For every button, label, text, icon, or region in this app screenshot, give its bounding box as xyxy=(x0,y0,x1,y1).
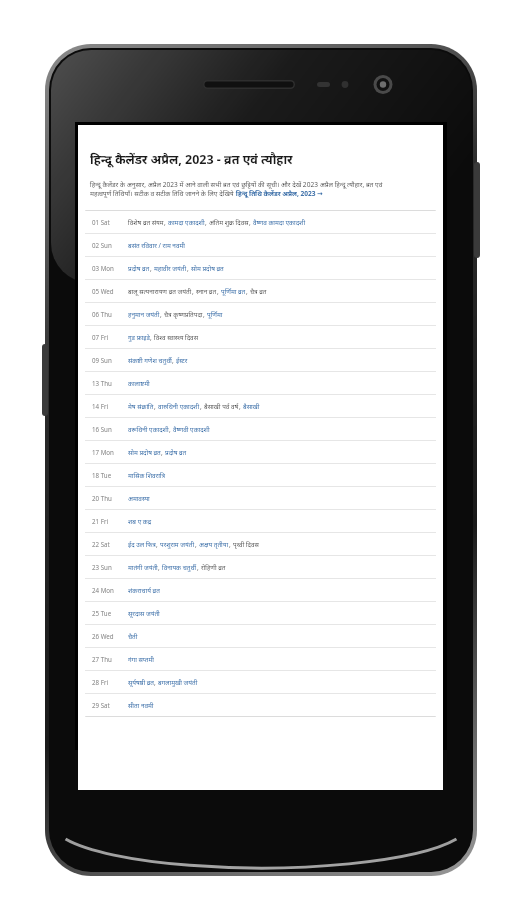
staticText: 28 Fri xyxy=(92,678,128,686)
staticText: वैष्णवी एकादशी xyxy=(173,425,210,434)
staticText: महावीर जयंती xyxy=(154,264,187,273)
staticText: बगलामुखी जयंती xyxy=(158,678,198,687)
staticText: , xyxy=(154,678,158,687)
button[interactable]: हिन्दू तिथि कैलेंडर अप्रैल, 2023 → xyxy=(236,189,323,198)
staticText: वैष्णव कामदा एकादशी xyxy=(253,218,306,227)
staticText: , xyxy=(192,287,196,296)
staticText: , xyxy=(217,287,221,296)
staticText: गंगा सप्तमी xyxy=(128,655,154,664)
button[interactable]: 06 Thu xyxy=(85,303,436,325)
staticText: विश्व स्वास्थ्य दिवस xyxy=(154,333,198,342)
staticText: , xyxy=(150,333,154,342)
staticText: पृथ्वी दिवस xyxy=(233,540,259,549)
staticText: चैती xyxy=(128,632,138,641)
staticText: 27 Thu xyxy=(92,655,128,663)
button[interactable]: 20 Thu xyxy=(85,487,436,509)
staticText: प्रदोष व्रत xyxy=(128,264,150,273)
staticText: विनायक चतुर्थी xyxy=(162,563,197,572)
staticText: प्रदोष व्रत xyxy=(165,448,187,457)
button[interactable]: 02 Sun xyxy=(85,234,436,256)
button[interactable]: 22 Sat xyxy=(85,533,436,555)
staticText: 22 Sat xyxy=(92,540,128,548)
staticText: , xyxy=(150,264,154,273)
button[interactable]: 01 Sat xyxy=(85,211,436,233)
staticText: रोहिणी व्रत xyxy=(201,563,226,572)
button[interactable]: 26 Wed xyxy=(85,625,436,647)
staticText: सोम प्रदोष व्रत xyxy=(128,448,161,457)
staticText: 18 Tue xyxy=(92,471,128,479)
staticText: 06 Thu xyxy=(92,310,128,318)
staticText: , xyxy=(249,218,253,227)
staticText: चैत्र कृष्णप्रतिपदा xyxy=(164,310,203,319)
staticText: चैत्र व्रत xyxy=(250,287,267,296)
staticText: वारुथिनी एकादशी xyxy=(158,402,200,411)
button[interactable]: 27 Thu xyxy=(85,648,436,670)
staticText: मातंगी जयंती xyxy=(128,563,158,572)
button[interactable]: 28 Fri xyxy=(85,671,436,693)
staticText: 26 Wed xyxy=(92,632,128,640)
button[interactable]: 25 Tue xyxy=(85,602,436,624)
staticText: बसंत रविवार / राम नवमी xyxy=(128,241,185,250)
staticText: , xyxy=(205,218,209,227)
staticText: पूर्णिमा व्रत xyxy=(221,287,246,296)
button[interactable]: 05 Wed xyxy=(85,280,436,302)
staticText: , xyxy=(197,563,201,572)
staticText: , xyxy=(154,402,158,411)
staticText: 05 Wed xyxy=(92,287,128,295)
staticText: बैसाखी xyxy=(243,402,260,411)
staticText: 13 Thu xyxy=(92,379,128,387)
staticText: शब ए कद्र xyxy=(128,517,152,526)
staticText: , xyxy=(164,218,168,227)
staticText: 24 Mon xyxy=(92,586,128,594)
button[interactable]: 14 Fri xyxy=(85,395,436,417)
staticText: कामदा एकादशी xyxy=(168,218,205,227)
staticText: गुड फ्राइडे xyxy=(128,333,150,342)
staticText: 17 Mon xyxy=(92,448,128,456)
staticText: वरूथिनी एकादशी xyxy=(128,425,169,434)
button[interactable]: 18 Tue xyxy=(85,464,436,486)
staticText: अक्षय तृतीया xyxy=(199,540,229,549)
staticText: 25 Tue xyxy=(92,609,128,617)
button[interactable]: 17 Mon xyxy=(85,441,436,463)
staticText: विशेष व्रत संयम xyxy=(128,218,164,227)
staticText: , xyxy=(156,540,160,549)
staticText: 20 Thu xyxy=(92,494,128,502)
staticText: 03 Mon xyxy=(92,264,128,272)
staticText: 16 Sun xyxy=(92,425,128,433)
staticText: , xyxy=(169,425,173,434)
button[interactable]: 03 Mon xyxy=(85,257,436,279)
button[interactable]: 29 Sat xyxy=(85,694,436,716)
staticText: 01 Sat xyxy=(92,218,128,226)
button[interactable]: 23 Sun xyxy=(85,556,436,578)
button[interactable]: हिन्दू कैलेंडर अप्रैल, 2023 - व्रत एवं त… xyxy=(90,151,293,168)
staticText: 09 Sun xyxy=(92,356,128,364)
staticText: सूरदास जयंती xyxy=(128,609,160,618)
button[interactable]: 16 Sun xyxy=(85,418,436,440)
staticText: , xyxy=(187,264,191,273)
staticText: पूर्णिमा xyxy=(207,310,223,319)
staticText: शंकराचार्य व्रत xyxy=(128,586,160,595)
staticText: ईस्टर xyxy=(176,356,188,365)
staticText: संकष्टी गणेश चतुर्थी xyxy=(128,356,172,365)
staticText: हिन्दू कैलेंडर के अनुसार, अप्रैल 2023 मे… xyxy=(90,180,383,189)
staticText: 14 Fri xyxy=(92,402,128,410)
staticText: , xyxy=(229,540,233,549)
staticText: महत्वपूर्ण तिथियाँ। सटीक व सटीक तिथि जान… xyxy=(90,189,236,198)
staticText: , xyxy=(200,402,204,411)
staticText: स्नान व्रत xyxy=(196,287,217,296)
staticText: सोम प्रदोष व्रत xyxy=(191,264,224,273)
staticText: अमावस्या xyxy=(128,494,150,503)
staticText: 02 Sun xyxy=(92,241,128,249)
staticText: बैसाखी पर्व वर्ष xyxy=(204,402,239,411)
button[interactable]: 07 Fri xyxy=(85,326,436,348)
button[interactable]: 13 Thu xyxy=(85,372,436,394)
staticText: , xyxy=(158,563,162,572)
button[interactable]: 24 Mon xyxy=(85,579,436,601)
button[interactable]: 21 Fri xyxy=(85,510,436,532)
staticText: हनुमान जयंती xyxy=(128,310,160,319)
staticText: , xyxy=(160,310,164,319)
button[interactable]: 09 Sun xyxy=(85,349,436,371)
staticText: मेष संक्रांति xyxy=(128,402,154,411)
staticText: 23 Sun xyxy=(92,563,128,571)
staticText: , xyxy=(161,448,165,457)
